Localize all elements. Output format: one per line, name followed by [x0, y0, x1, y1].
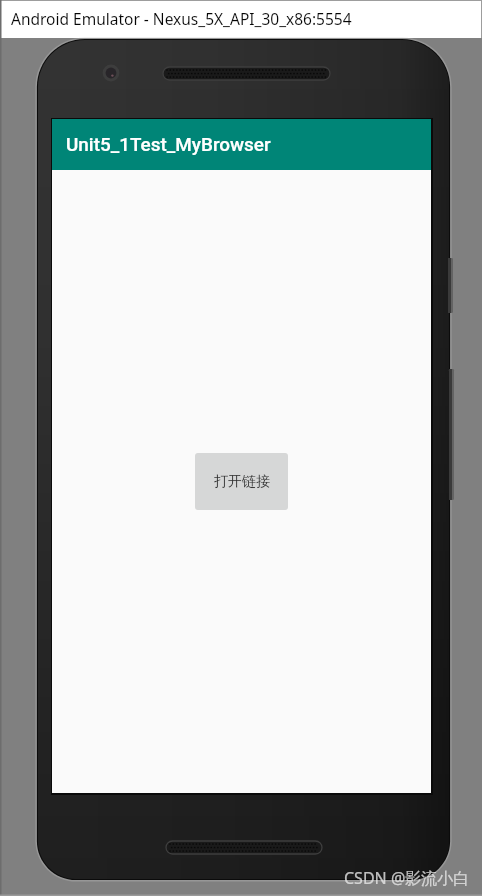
button[interactable]: 打开链接 [195, 453, 288, 510]
staticText: 打开链接 [214, 473, 270, 491]
staticText: CSDN @影流小白 [344, 867, 470, 889]
staticText: Android Emulator - Nexus_5X_API_30_x86:5… [11, 8, 352, 29]
staticText: Unit5_1Test_MyBrowser [66, 133, 271, 155]
